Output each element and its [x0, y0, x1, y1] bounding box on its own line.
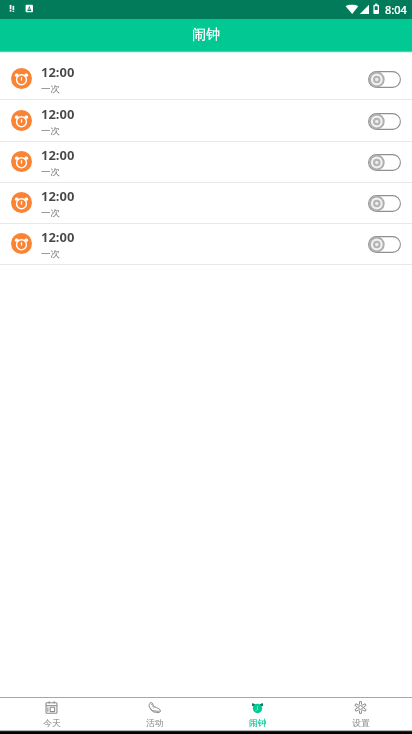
- staticText: 12:00: [41, 63, 75, 81]
- button[interactable]: 12:00: [0, 224, 412, 265]
- button[interactable]: Toggle alarm: [368, 71, 401, 88]
- staticText: 闹钟: [249, 718, 267, 729]
- button[interactable]: Toggle alarm: [368, 236, 401, 253]
- staticText: 一次: [41, 125, 60, 137]
- staticText: 设置: [352, 718, 370, 729]
- staticText: 8:04: [385, 2, 407, 17]
- staticText: 12:00: [41, 187, 75, 205]
- staticText: 12:00: [41, 105, 75, 123]
- staticText: 一次: [41, 248, 60, 260]
- button[interactable]: 12:00: [0, 142, 412, 183]
- staticText: 一次: [41, 166, 60, 178]
- staticText: 12:00: [41, 146, 75, 164]
- staticText: 12:00: [41, 228, 75, 246]
- button[interactable]: Settings: [309, 698, 412, 730]
- button[interactable]: 12:00: [0, 183, 412, 224]
- button[interactable]: 12:00: [0, 101, 412, 142]
- button[interactable]: Toggle alarm: [368, 195, 401, 212]
- button[interactable]: Activity: [103, 698, 206, 730]
- button[interactable]: Alarm: [206, 698, 309, 730]
- staticText: 闹钟: [192, 26, 220, 44]
- staticText: 一次: [41, 207, 60, 219]
- staticText: 活动: [146, 718, 164, 729]
- button[interactable]: Toggle alarm: [368, 154, 401, 171]
- button[interactable]: Toggle alarm: [368, 113, 401, 130]
- button[interactable]: 12:00: [0, 59, 412, 100]
- staticText: 一次: [41, 83, 60, 95]
- staticText: 今天: [43, 718, 61, 729]
- button[interactable]: Today: [0, 698, 103, 730]
